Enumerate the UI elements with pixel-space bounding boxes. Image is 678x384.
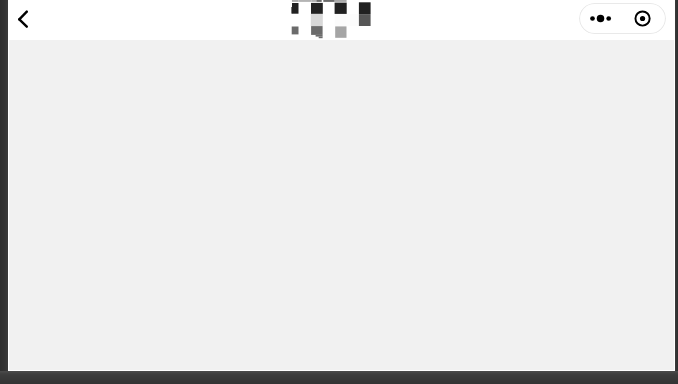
button[interactable]: More options [579, 3, 622, 34]
button[interactable]: Back [13, 0, 45, 40]
button[interactable]: Close mini program [622, 3, 665, 34]
